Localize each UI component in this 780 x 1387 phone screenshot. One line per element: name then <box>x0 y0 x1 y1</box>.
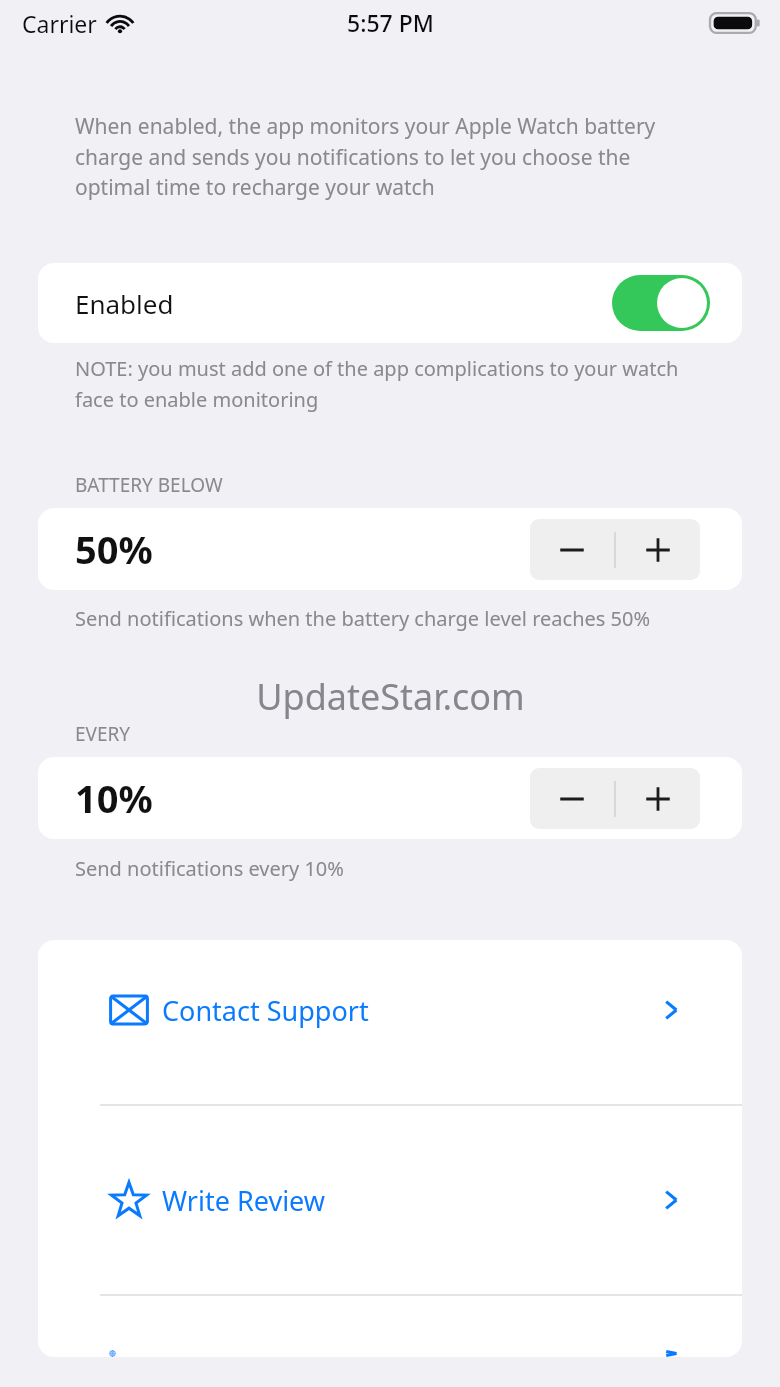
staticText: 10% <box>75 772 153 824</box>
staticText: NOTE: you must add one of the app compli… <box>75 355 695 412</box>
staticText: 50% <box>75 523 153 575</box>
staticText: BATTERY BELOW <box>75 472 223 498</box>
staticText: Contact Support <box>162 992 369 1029</box>
staticText: Send notifications when the battery char… <box>75 605 651 632</box>
button[interactable]: Contact Support <box>38 970 742 1050</box>
staticText: Write Review <box>162 1182 326 1219</box>
staticText: UpdateStar.com <box>256 672 525 721</box>
staticText: Carrier <box>22 8 97 39</box>
staticText: EVERY <box>75 721 131 747</box>
button[interactable]: My Other Apps <box>38 1350 742 1357</box>
button[interactable]: Enabled <box>38 263 742 343</box>
button[interactable]: Enabled toggle <box>612 275 710 331</box>
button[interactable]: Decrease <box>530 519 614 580</box>
other: My Other Apps <box>656 1350 686 1357</box>
staticText: Enabled <box>75 286 174 321</box>
button[interactable]: Increase <box>616 519 700 580</box>
button[interactable]: Write Review <box>38 1160 742 1240</box>
button[interactable]: Decrease <box>530 768 614 829</box>
other: Contact Support <box>656 995 686 1025</box>
staticText: When enabled, the app monitors your Appl… <box>75 112 675 201</box>
staticText: 5:57 PM <box>347 7 434 38</box>
staticText: Send notifications every 10% <box>75 855 344 882</box>
button[interactable]: Increase <box>616 768 700 829</box>
other: Write Review <box>656 1185 686 1215</box>
